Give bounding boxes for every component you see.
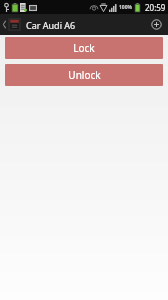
staticText: Unlock <box>68 68 101 82</box>
staticText: 20:59 <box>145 2 166 13</box>
button[interactable]: Add <box>144 14 168 35</box>
staticText: 100% <box>119 4 133 11</box>
staticText: Lock <box>73 41 95 55</box>
button[interactable]: Navigate up <box>0 14 23 35</box>
button[interactable]: Lock <box>5 37 163 59</box>
button[interactable]: Unlock <box>5 64 163 86</box>
staticText: Car Audi A6 <box>26 19 144 31</box>
